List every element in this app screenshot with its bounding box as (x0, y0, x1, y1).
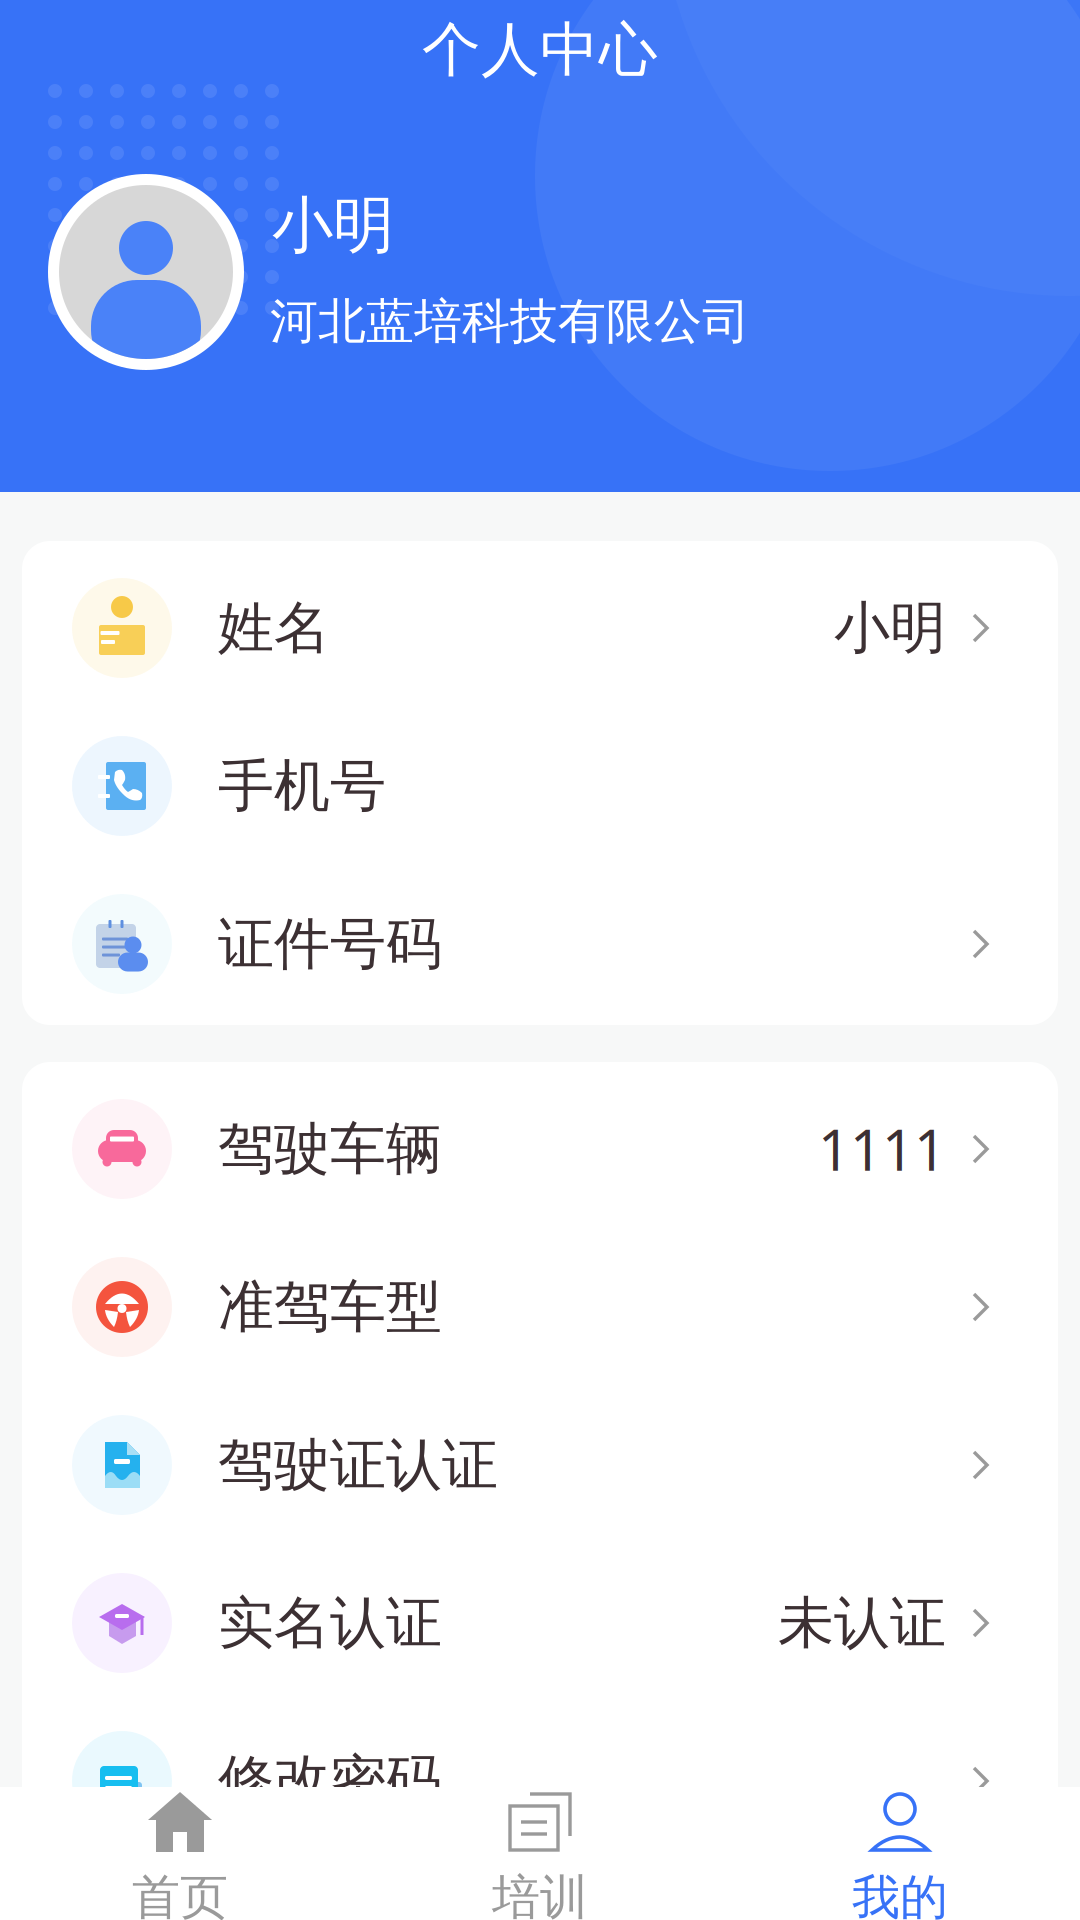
staticText: 姓名 (218, 594, 330, 662)
staticText: 实名认证 (218, 1589, 442, 1657)
staticText: 驾驶证认证 (218, 1431, 498, 1499)
staticText: 首页 (132, 1868, 228, 1920)
button[interactable]: 准驾车型 (22, 1228, 1058, 1386)
button[interactable]: 姓名 (22, 549, 1058, 707)
button[interactable]: 证件号码 (22, 865, 1058, 1023)
staticText: 未认证 (778, 1589, 946, 1657)
staticText: 1111 (818, 1112, 946, 1186)
staticText: 手机号 (218, 752, 386, 820)
staticText: 修改密码 (218, 1747, 442, 1815)
button[interactable]: 手机号 (22, 707, 1058, 865)
staticText: 驾驶车辆 (218, 1115, 442, 1183)
button[interactable]: 驾驶证认证 (22, 1386, 1058, 1544)
staticText: 证件号码 (218, 910, 442, 978)
staticText: 小明 (272, 188, 394, 263)
button[interactable]: 我的 (720, 1767, 1080, 1920)
button[interactable]: 首页 (0, 1767, 360, 1920)
button[interactable]: 培训 (360, 1767, 720, 1920)
button[interactable]: 驾驶车辆 (22, 1070, 1058, 1228)
button[interactable]: 修改密码 (22, 1702, 1058, 1860)
staticText: 小明 (834, 594, 946, 662)
staticText: 个人中心 (422, 14, 658, 86)
staticText: 准驾车型 (218, 1273, 442, 1341)
staticText: 培训 (492, 1868, 588, 1920)
button[interactable]: 实名认证 (22, 1544, 1058, 1702)
staticText: 河北蓝培科技有限公司 (270, 292, 750, 351)
staticText: 我的 (852, 1868, 948, 1920)
